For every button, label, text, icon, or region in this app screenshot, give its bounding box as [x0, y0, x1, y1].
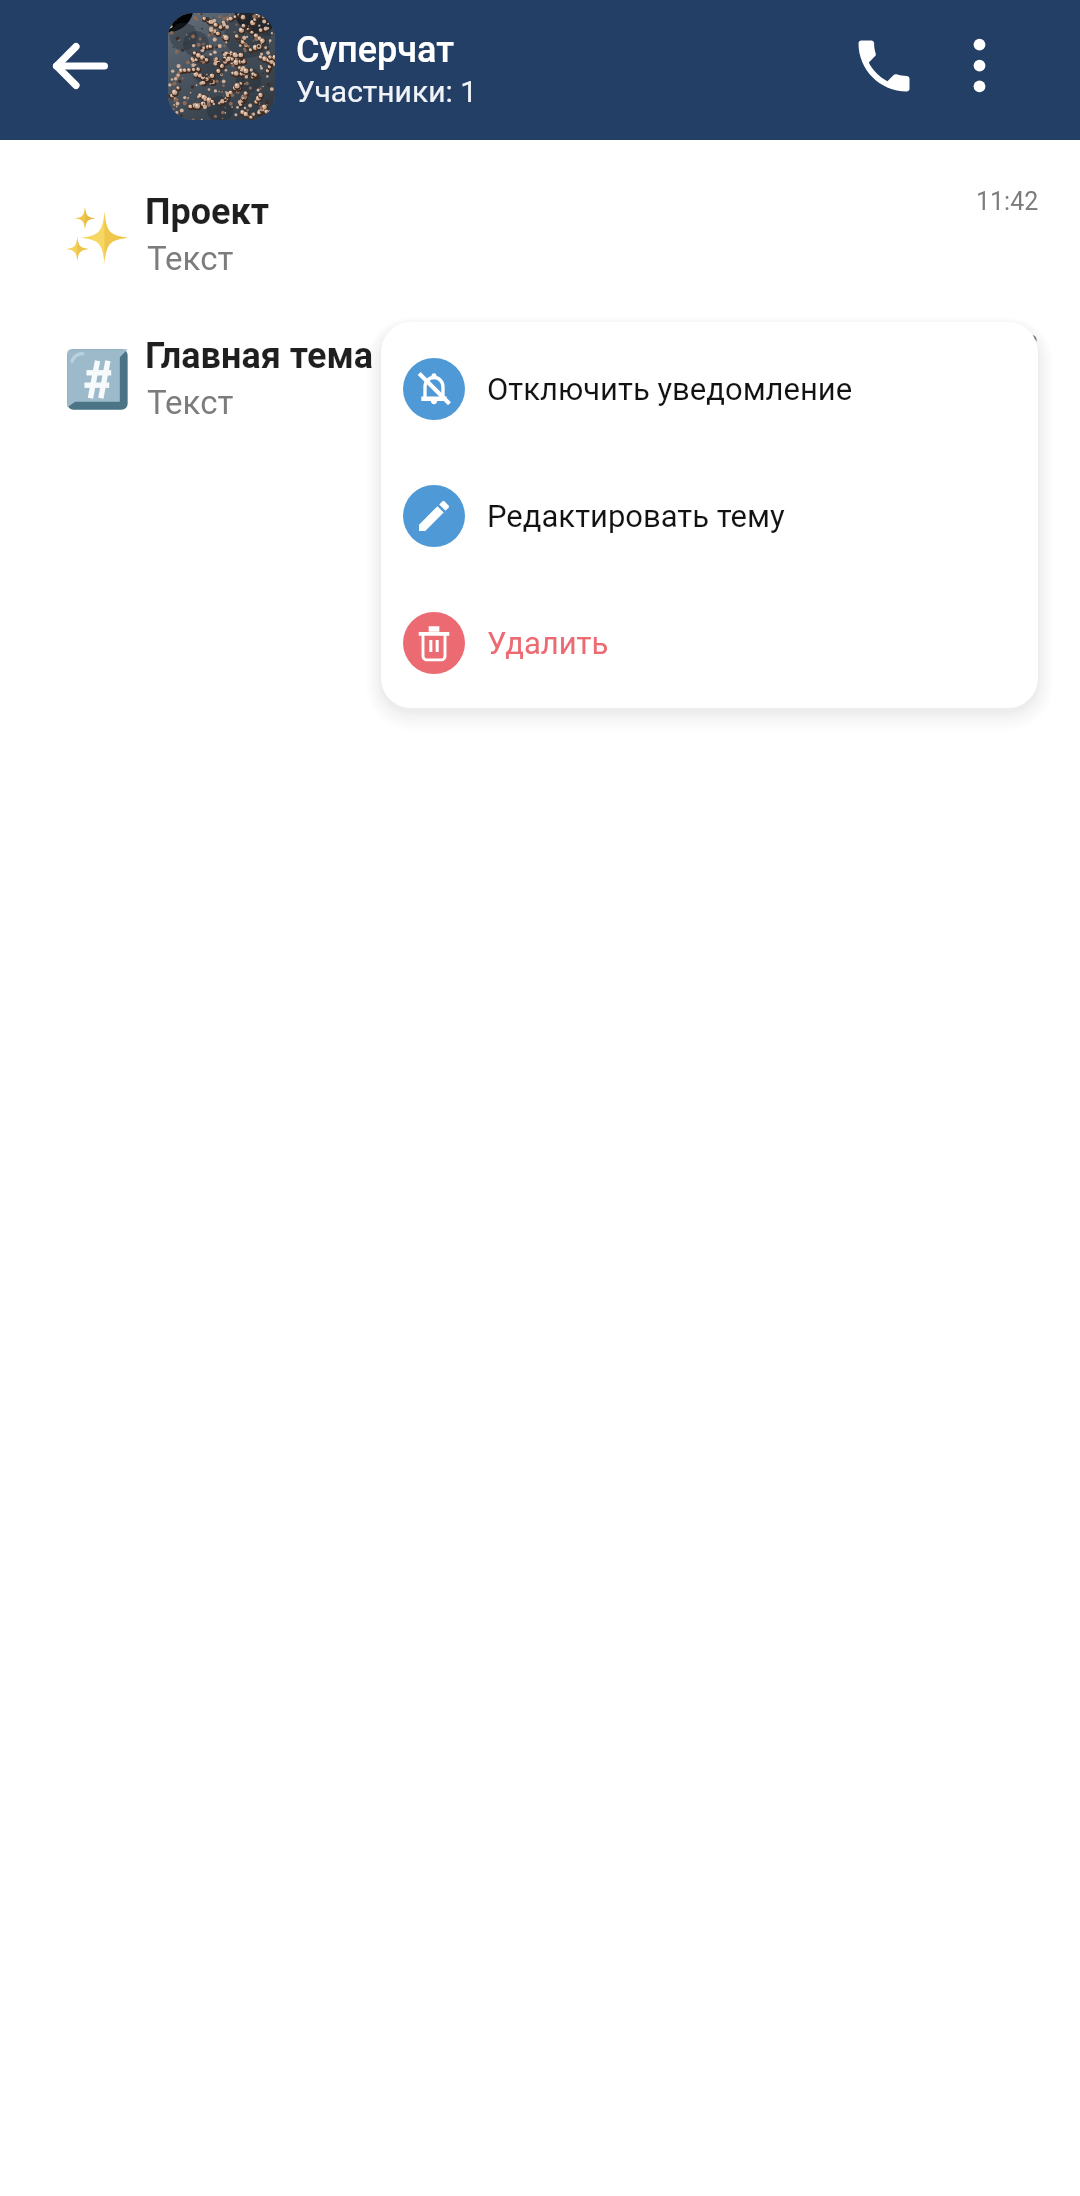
staticText: Редактировать тему [487, 498, 785, 534]
staticText: Удалить [487, 625, 609, 661]
staticText: Суперчат [296, 29, 455, 71]
staticText: Текст [147, 239, 234, 278]
staticText: 11:42 [976, 187, 1039, 216]
staticText: Проект [145, 191, 270, 233]
button[interactable]: Отключить уведомление [381, 337, 1038, 441]
button[interactable]: Проект [0, 155, 1080, 299]
staticText: Главная тема [145, 335, 374, 377]
button[interactable]: More options [940, 0, 1080, 140]
button[interactable]: Суперчат [156, 0, 806, 140]
staticText: 11:42 [976, 331, 1039, 360]
staticText: Участники: 1 [296, 74, 478, 109]
staticText: Отключить уведомление [487, 371, 853, 407]
button[interactable]: Удалить [381, 591, 1038, 695]
button[interactable]: Редактировать тему [381, 464, 1038, 568]
staticText: Текст [147, 383, 234, 422]
button[interactable]: Call [814, 0, 940, 140]
button[interactable]: Back [0, 0, 156, 140]
button[interactable]: Главная тема [0, 299, 1080, 443]
